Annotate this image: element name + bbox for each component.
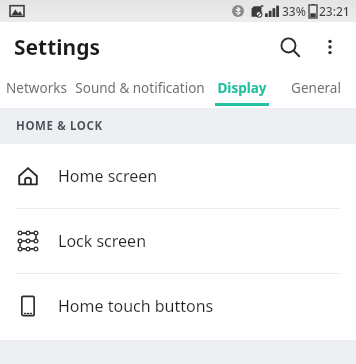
staticText: Lock screen bbox=[58, 230, 147, 252]
button[interactable]: Sound & notification bbox=[73, 72, 207, 108]
staticText: 33% bbox=[282, 3, 306, 19]
staticText: Home screen bbox=[58, 165, 158, 187]
button[interactable]: Networks bbox=[0, 72, 73, 108]
staticText: HOME & LOCK bbox=[16, 118, 103, 134]
button[interactable]: General bbox=[276, 72, 356, 108]
staticText: General bbox=[291, 79, 341, 97]
staticText: Networks bbox=[6, 79, 67, 97]
button[interactable]: Search bbox=[270, 27, 310, 67]
button[interactable]: Lock screen bbox=[0, 209, 356, 273]
staticText: Settings bbox=[14, 33, 101, 62]
staticText: Sound & notification bbox=[75, 79, 205, 97]
staticText: Display bbox=[217, 79, 267, 97]
button[interactable]: Home touch buttons bbox=[0, 274, 356, 338]
button[interactable]: Home screen bbox=[0, 144, 356, 208]
staticText: Home touch buttons bbox=[58, 295, 214, 317]
button[interactable]: Display bbox=[207, 72, 276, 108]
button[interactable]: More options bbox=[310, 27, 350, 67]
staticText: 23:21 bbox=[319, 3, 350, 19]
